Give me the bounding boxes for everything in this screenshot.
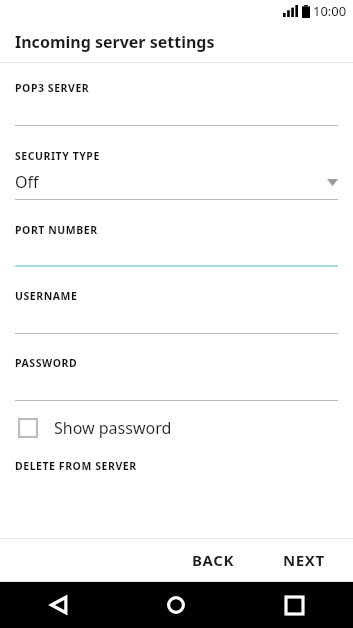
button[interactable]: NEXT xyxy=(267,542,341,578)
staticText: BACK xyxy=(192,550,235,570)
staticText: 10:00 xyxy=(313,2,347,20)
staticText: Off xyxy=(15,171,327,193)
staticText: PORT NUMBER xyxy=(15,223,98,237)
button[interactable]: Show password xyxy=(15,413,338,443)
button[interactable]: Back xyxy=(0,582,117,628)
other: Open security type dropdown xyxy=(327,179,338,186)
button[interactable]: DELETE FROM SERVER xyxy=(15,459,137,473)
staticText: Incoming server settings xyxy=(15,31,215,53)
staticText: SECURITY TYPE xyxy=(15,149,100,163)
staticText: NEXT xyxy=(283,550,325,570)
button[interactable]: Home xyxy=(117,582,235,628)
button[interactable]: Recent apps xyxy=(235,582,353,628)
staticText: PASSWORD xyxy=(15,356,78,370)
staticText: USERNAME xyxy=(15,289,78,303)
button[interactable]: BACK xyxy=(176,542,251,578)
staticText: POP3 SERVER xyxy=(15,81,90,95)
staticText: Show password xyxy=(54,417,172,439)
button[interactable]: Off xyxy=(15,171,338,193)
